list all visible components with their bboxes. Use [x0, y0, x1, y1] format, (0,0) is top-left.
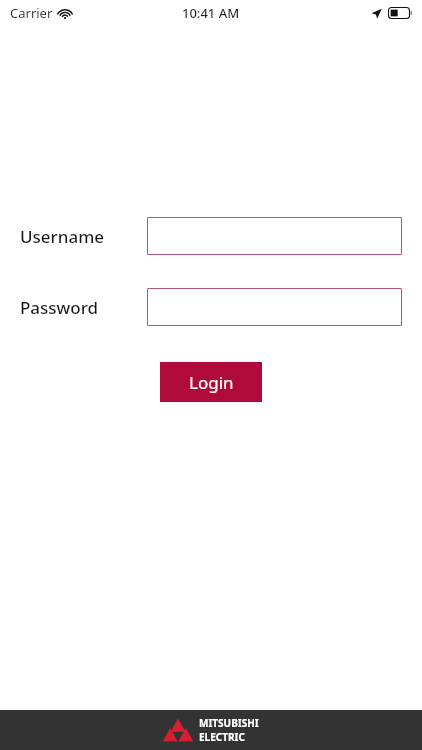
- button[interactable]: Username: [147, 217, 402, 255]
- staticText: 10:41 AM: [182, 4, 240, 22]
- button[interactable]: Login: [160, 362, 262, 402]
- staticText: Login: [189, 371, 234, 394]
- staticText: MITSUBISHI: [199, 716, 259, 730]
- button[interactable]: Password: [147, 288, 402, 326]
- staticText: ELECTRIC: [199, 730, 245, 744]
- staticText: Username: [20, 225, 104, 248]
- staticText: Password: [20, 296, 99, 319]
- staticText: Carrier: [10, 4, 53, 22]
